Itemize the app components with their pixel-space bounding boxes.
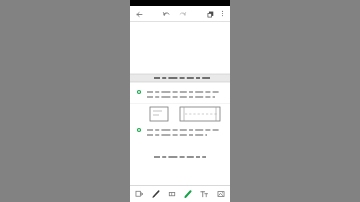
button[interactable]: Redo [176, 8, 188, 20]
button[interactable]: Pen [149, 187, 163, 201]
button[interactable]: Layers [204, 8, 216, 20]
button[interactable]: Undo [160, 8, 172, 20]
button[interactable]: Text [197, 187, 211, 201]
button[interactable]: More options [217, 8, 228, 19]
button[interactable]: Eraser [165, 187, 179, 201]
button[interactable]: Back [133, 8, 145, 20]
button[interactable]: Image [214, 187, 228, 201]
button[interactable]: Select [132, 187, 146, 201]
button[interactable]: Highlighter [181, 187, 195, 201]
